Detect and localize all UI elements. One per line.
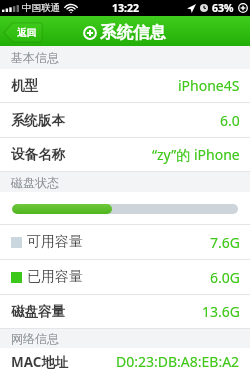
button[interactable]: 磁盘容量 bbox=[0, 295, 250, 329]
staticText: MAC地址 bbox=[11, 353, 69, 371]
button[interactable]: 系统版本 bbox=[0, 103, 250, 138]
button[interactable]: 可用容量 bbox=[0, 225, 250, 260]
button[interactable]: 设备名称 bbox=[0, 138, 250, 172]
staticText: 设备名称 bbox=[11, 146, 65, 163]
staticText: 网络信息 bbox=[11, 331, 59, 346]
staticText: 13:22 bbox=[112, 1, 139, 15]
button[interactable]: MAC地址 bbox=[0, 348, 250, 375]
staticText: D0:23:DB:A8:EB:A2 bbox=[116, 352, 240, 371]
staticText: 系统信息 bbox=[100, 22, 166, 43]
staticText: 返回 bbox=[17, 27, 36, 39]
staticText: 中国联通 bbox=[22, 2, 60, 14]
staticText: 13.6G bbox=[202, 302, 240, 321]
staticText: 6.0 bbox=[220, 111, 240, 130]
staticText: 63% bbox=[212, 1, 234, 15]
button[interactable]: 机型 bbox=[0, 69, 250, 103]
staticText: 系统版本 bbox=[11, 112, 65, 129]
staticText: 磁盘容量 bbox=[11, 303, 65, 320]
staticText: 可用容量 bbox=[27, 233, 83, 251]
staticText: “zy”的 iPhone bbox=[152, 145, 240, 164]
staticText: iPhone4S bbox=[178, 76, 240, 95]
staticText: 磁盘状态 bbox=[11, 175, 59, 190]
staticText: 6.0G bbox=[210, 268, 240, 287]
staticText: 机型 bbox=[11, 77, 38, 94]
staticText: 7.6G bbox=[210, 233, 240, 252]
button[interactable]: 已用容量 bbox=[0, 260, 250, 295]
button[interactable]: 返回 bbox=[3, 22, 43, 43]
staticText: 基本信息 bbox=[11, 50, 59, 65]
staticText: 已用容量 bbox=[27, 268, 83, 286]
